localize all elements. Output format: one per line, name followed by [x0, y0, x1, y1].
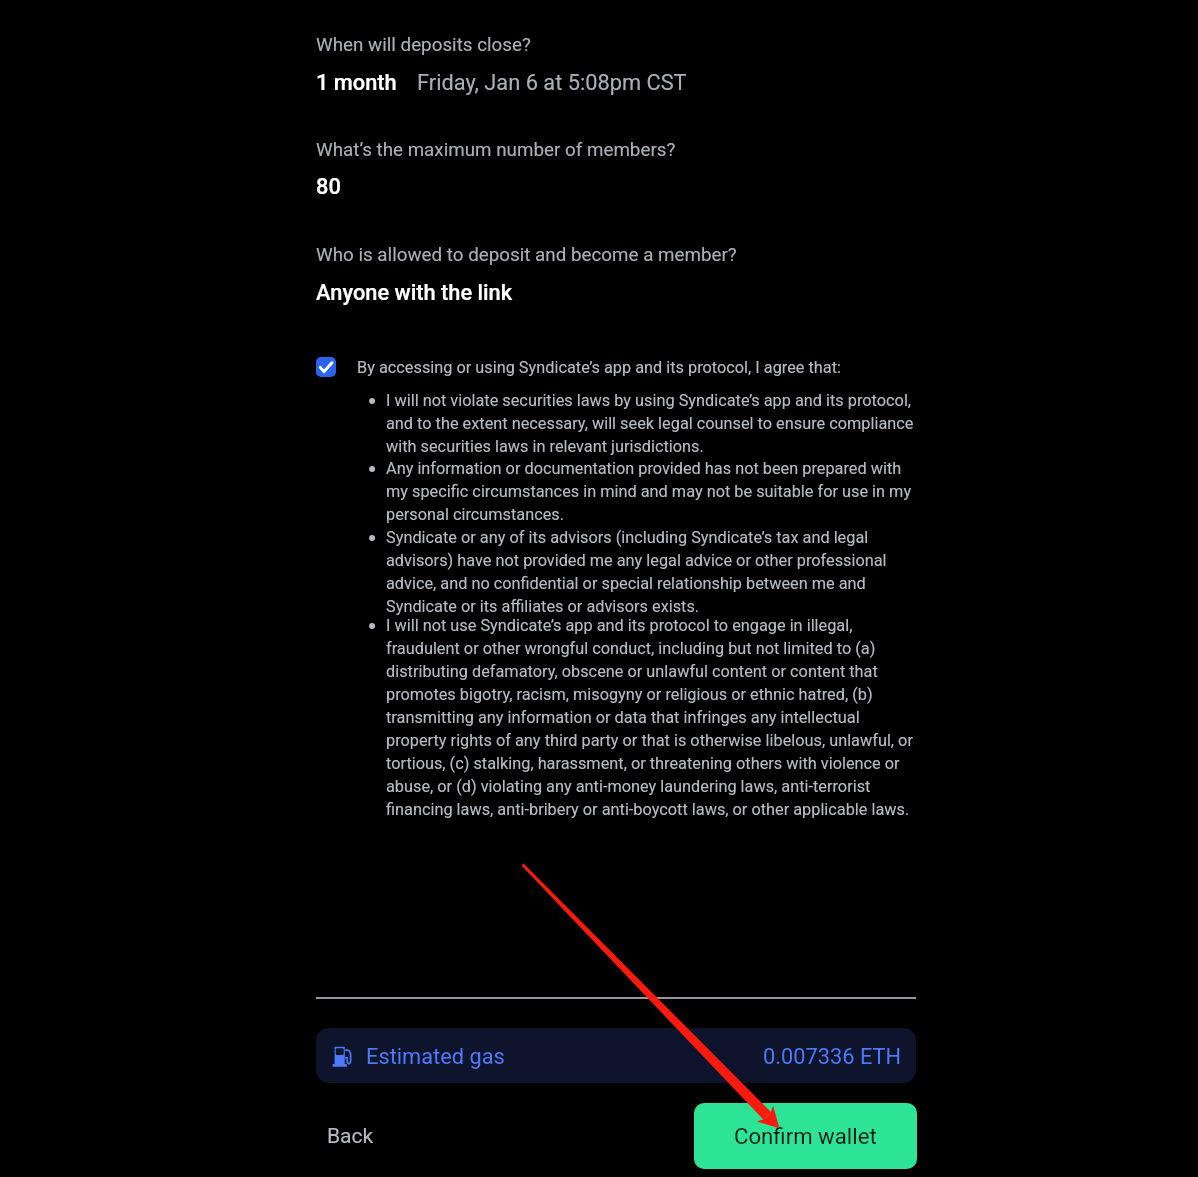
button[interactable]: Confirm wallet [694, 1103, 917, 1169]
staticText: I will not use Syndicate’s app and its p… [386, 613, 916, 820]
staticText: When will deposits close? [316, 34, 531, 56]
staticText: Who is allowed to deposit and become a m… [316, 244, 737, 266]
staticText: Back [327, 1123, 374, 1148]
other: Gas [332, 1045, 352, 1067]
staticText: Syndicate or any of its advisors (includ… [386, 525, 916, 617]
staticText: 0.007336 ETH [763, 1043, 902, 1069]
staticText: By accessing or using Syndicate’s app an… [357, 355, 841, 378]
staticText: 80 [316, 173, 341, 199]
button[interactable]: Gas [316, 1028, 916, 1083]
staticText: Anyone with the link [316, 279, 513, 305]
button[interactable]: Back [315, 1113, 386, 1158]
staticText: 1 month [316, 69, 397, 95]
staticText: Estimated gas [366, 1043, 505, 1069]
staticText: What’s the maximum number of members? [316, 139, 676, 161]
other: Agree to terms [316, 357, 336, 377]
staticText: Any information or documentation provide… [386, 456, 916, 525]
staticText: Confirm wallet [734, 1123, 877, 1149]
button[interactable]: Agree to terms [316, 357, 916, 380]
staticText: I will not violate securities laws by us… [386, 388, 916, 457]
staticText: Friday, Jan 6 at 5:08pm CST [417, 69, 687, 95]
